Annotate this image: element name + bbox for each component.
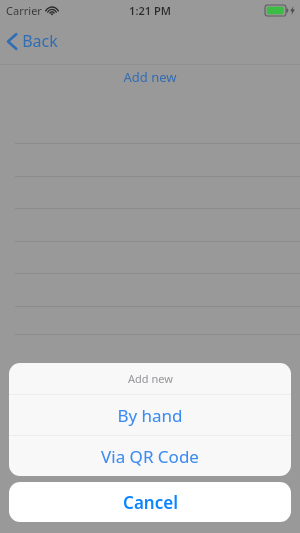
button[interactable]: Add new [113, 66, 187, 88]
button[interactable]: Via QR Code [9, 436, 291, 476]
staticText: Back [22, 30, 58, 52]
button[interactable]: By hand [9, 395, 291, 435]
staticText: Carrier [6, 3, 42, 18]
staticText: Add new [128, 371, 173, 386]
button[interactable]: Cancel [9, 482, 291, 522]
button[interactable]: Back [0, 25, 70, 57]
staticText: 1:21 PM [129, 3, 171, 18]
staticText: By hand [117, 404, 183, 427]
staticText: Add new [123, 68, 177, 86]
staticText: Cancel [123, 491, 178, 514]
staticText: Via QR Code [101, 445, 199, 468]
